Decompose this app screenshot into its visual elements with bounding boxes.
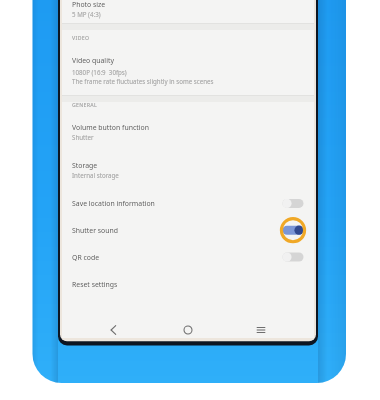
staticText: QR code <box>72 253 100 262</box>
button[interactable]: Recent apps <box>239 318 283 338</box>
staticText: Shutter <box>72 133 94 141</box>
staticText: Photo size <box>72 0 106 9</box>
staticText: Storage <box>72 161 98 170</box>
staticText: 5 MP (4:3) <box>72 10 101 18</box>
button[interactable]: Shutter sound <box>62 216 314 242</box>
button[interactable]: Video quality <box>62 50 314 96</box>
button[interactable]: Storage <box>62 152 314 188</box>
staticText: Internal storage <box>72 171 119 179</box>
staticText: Shutter sound <box>72 226 119 235</box>
button[interactable]: Back <box>93 318 137 338</box>
staticText: Save location information <box>72 199 155 208</box>
staticText: Reset settings <box>72 280 118 289</box>
button[interactable]: Save location information <box>62 189 314 215</box>
staticText: Volume button function <box>72 123 149 132</box>
staticText: VIDEO <box>72 34 90 41</box>
staticText: Video quality <box>72 56 114 65</box>
staticText: 1080P (16:9 30fps) <box>72 68 127 76</box>
staticText: The frame rate fluctuates slightly in so… <box>72 77 214 85</box>
button[interactable]: Home <box>166 318 210 338</box>
button[interactable]: Reset settings <box>62 269 314 295</box>
button[interactable]: Volume button function <box>62 114 314 150</box>
button[interactable]: QR code <box>62 242 314 268</box>
staticText: GENERAL <box>72 101 98 108</box>
button[interactable]: Photo size <box>62 0 314 24</box>
